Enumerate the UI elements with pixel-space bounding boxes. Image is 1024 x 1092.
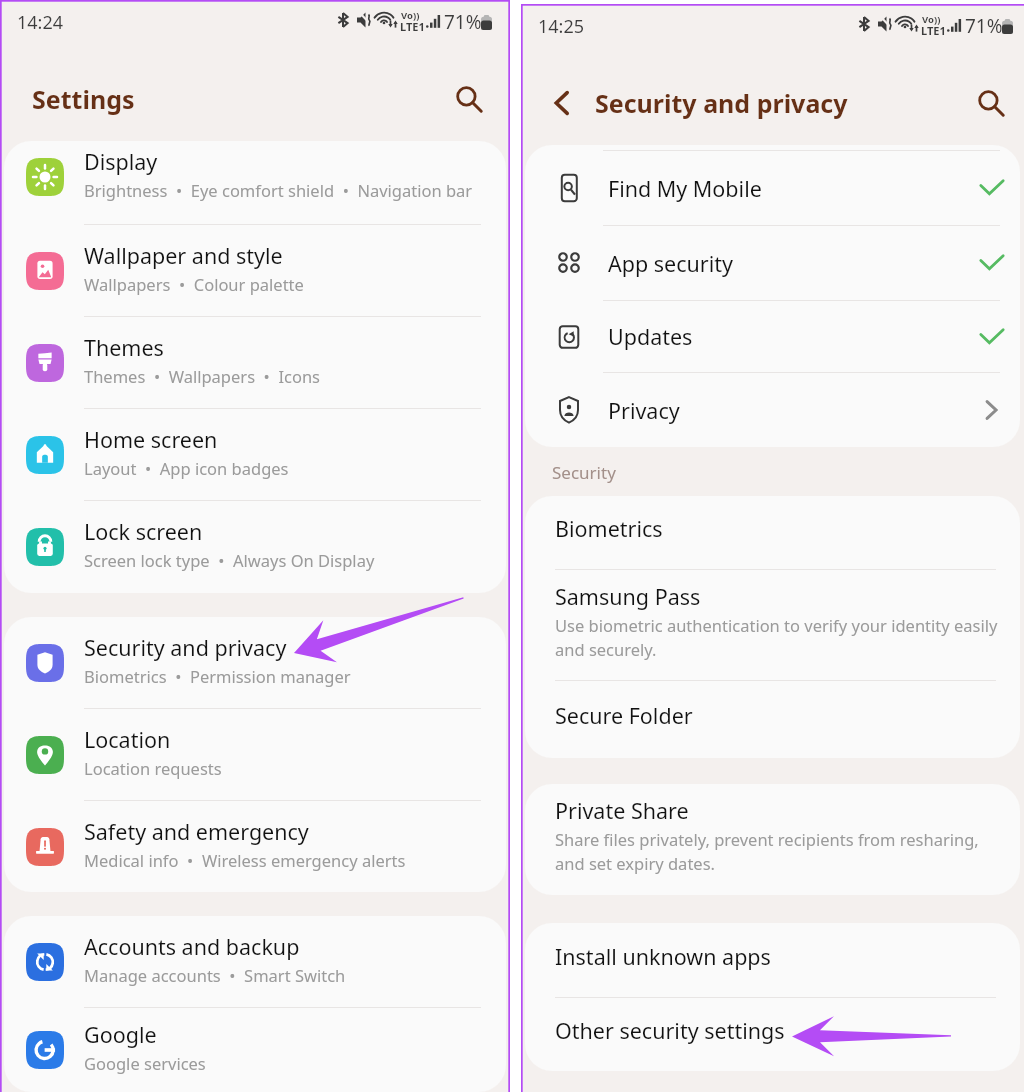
button[interactable]: Samsung Pass	[525, 570, 1020, 680]
button[interactable]: Location	[4, 709, 506, 800]
button[interactable]: Home screen	[4, 409, 506, 500]
staticText: 14:24	[17, 10, 64, 35]
staticText: Home screen	[84, 425, 218, 454]
staticText: Samsung Pass	[555, 582, 701, 611]
button[interactable]: Install unknown apps	[525, 923, 1020, 997]
button[interactable]: Accounts and backup	[4, 916, 506, 1007]
staticText: Biometrics • Permission manager	[84, 665, 351, 687]
button[interactable]: Search	[447, 77, 491, 121]
button[interactable]: Private Share	[525, 784, 1020, 895]
staticText: Location requests	[84, 757, 222, 779]
staticText: Vo))	[401, 9, 420, 22]
staticText: Layout • App icon badges	[84, 457, 289, 479]
button[interactable]: Search	[969, 81, 1013, 125]
button[interactable]: Secure Folder	[525, 681, 1020, 758]
staticText: LTE1	[921, 23, 946, 38]
button[interactable]: App security	[525, 226, 1020, 300]
staticText: Find My Mobile	[608, 174, 979, 203]
staticText: Themes	[84, 333, 164, 362]
staticText: Google	[84, 1020, 157, 1049]
button[interactable]: Security and privacy	[4, 617, 506, 708]
staticText: Security	[552, 461, 616, 484]
staticText: Security and privacy	[595, 86, 848, 120]
button[interactable]: Safety and emergency	[4, 801, 506, 892]
staticText: Google services	[84, 1052, 206, 1074]
button[interactable]: Updates	[525, 301, 1020, 372]
staticText: Security and privacy	[84, 633, 287, 662]
staticText: Manage accounts • Smart Switch	[84, 964, 346, 986]
staticText: Install unknown apps	[555, 942, 771, 971]
staticText: Biometrics	[555, 514, 663, 543]
staticText: Lock screen	[84, 517, 203, 546]
button[interactable]: Display	[4, 141, 506, 224]
staticText: 14:25	[538, 14, 585, 39]
staticText: Secure Folder	[555, 701, 693, 730]
staticText: Other security settings	[555, 1016, 785, 1045]
staticText: Share files privately, prevent recipient…	[555, 828, 998, 875]
staticText: Updates	[608, 322, 979, 351]
staticText: Accounts and backup	[84, 932, 300, 961]
staticText: Medical info • Wireless emergency alerts	[84, 849, 406, 871]
staticText: LTE1	[400, 19, 425, 34]
button[interactable]: Google	[4, 1008, 506, 1092]
button[interactable]: Themes	[4, 317, 506, 408]
button[interactable]: Find My Mobile	[525, 151, 1020, 225]
staticText: Themes • Wallpapers • Icons	[84, 365, 320, 387]
button[interactable]: Other security settings	[525, 998, 1020, 1071]
staticText: Display	[84, 147, 158, 176]
staticText: Safety and emergency	[84, 817, 309, 846]
staticText: Location	[84, 725, 171, 754]
staticText: 71%	[965, 13, 1003, 39]
staticText: 71%	[444, 9, 482, 35]
button[interactable]: Wallpaper and style	[4, 225, 506, 316]
staticText: Settings	[32, 82, 135, 116]
button[interactable]: Biometrics	[525, 496, 1020, 569]
staticText: Wallpaper and style	[84, 241, 283, 270]
staticText: Wallpapers • Colour palette	[84, 273, 304, 295]
button[interactable]: Lock screen	[4, 501, 506, 593]
button[interactable]: Back	[540, 81, 584, 125]
staticText: Use biometric authentication to verify y…	[555, 614, 998, 661]
staticText: Brightness • Eye comfort shield • Naviga…	[84, 179, 473, 201]
staticText: Privacy	[608, 396, 977, 425]
staticText: Private Share	[555, 796, 689, 825]
staticText: Screen lock type • Always On Display	[84, 549, 375, 571]
button[interactable]: Privacy	[525, 373, 1020, 447]
staticText: App security	[608, 249, 979, 278]
staticText: Vo))	[922, 13, 941, 26]
